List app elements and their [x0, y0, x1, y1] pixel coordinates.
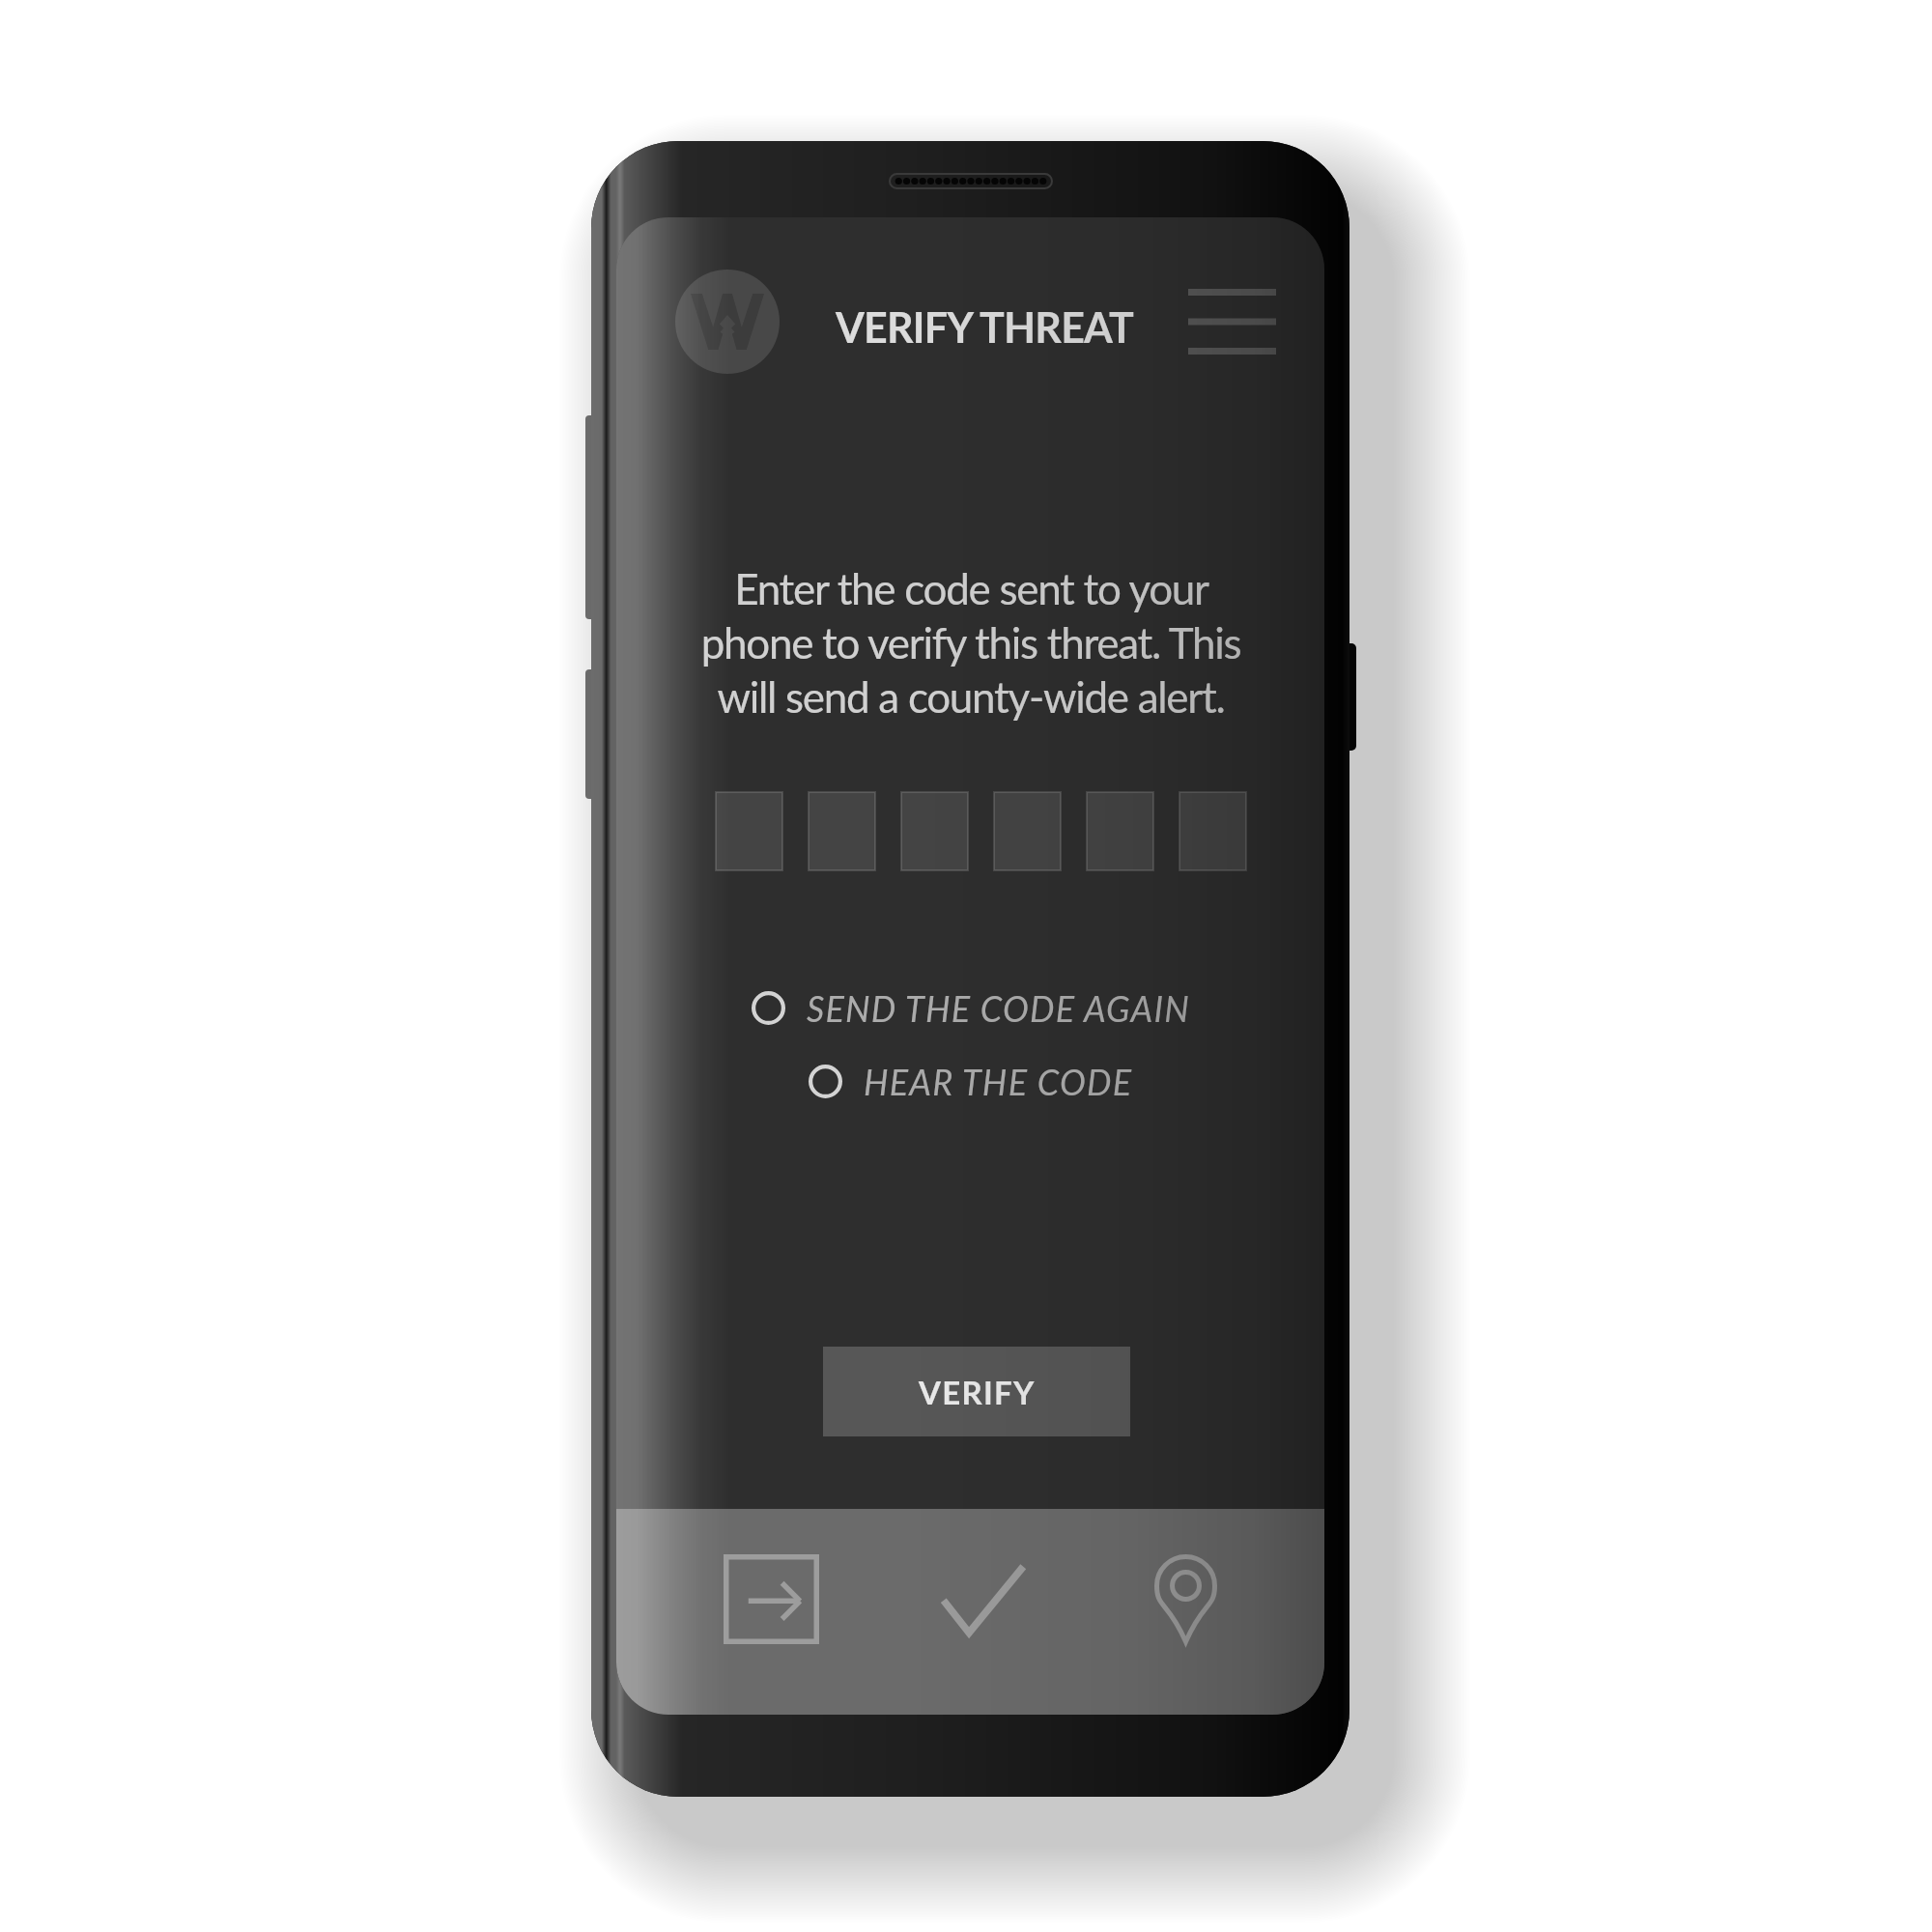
button[interactable]: App logo	[675, 270, 780, 374]
button[interactable]: Code digit 3	[901, 792, 968, 870]
staticText: Enter the code sent to your phone to ver…	[678, 563, 1264, 722]
button[interactable]: Code digit 6	[1179, 792, 1246, 870]
button[interactable]: SEND THE CODE AGAIN	[752, 982, 1190, 1034]
button[interactable]: Code digit 2	[809, 792, 875, 870]
button[interactable]: Menu	[1188, 289, 1276, 355]
button[interactable]: Code digit 1	[716, 792, 782, 870]
button[interactable]: Enter	[724, 1554, 819, 1644]
staticText: HEAR THE CODE	[864, 1061, 1133, 1102]
button[interactable]: Location	[1154, 1554, 1217, 1644]
staticText: VERIFY	[919, 1373, 1036, 1411]
button[interactable]: Code digit 4	[994, 792, 1061, 870]
staticText: VERIFY THREAT	[836, 302, 1134, 353]
button[interactable]: HEAR THE CODE	[809, 1056, 1133, 1107]
staticText: SEND THE CODE AGAIN	[807, 987, 1190, 1029]
button[interactable]: Confirm	[940, 1563, 1027, 1636]
button[interactable]: VERIFY	[823, 1347, 1130, 1436]
button[interactable]: Code digit 5	[1087, 792, 1153, 870]
